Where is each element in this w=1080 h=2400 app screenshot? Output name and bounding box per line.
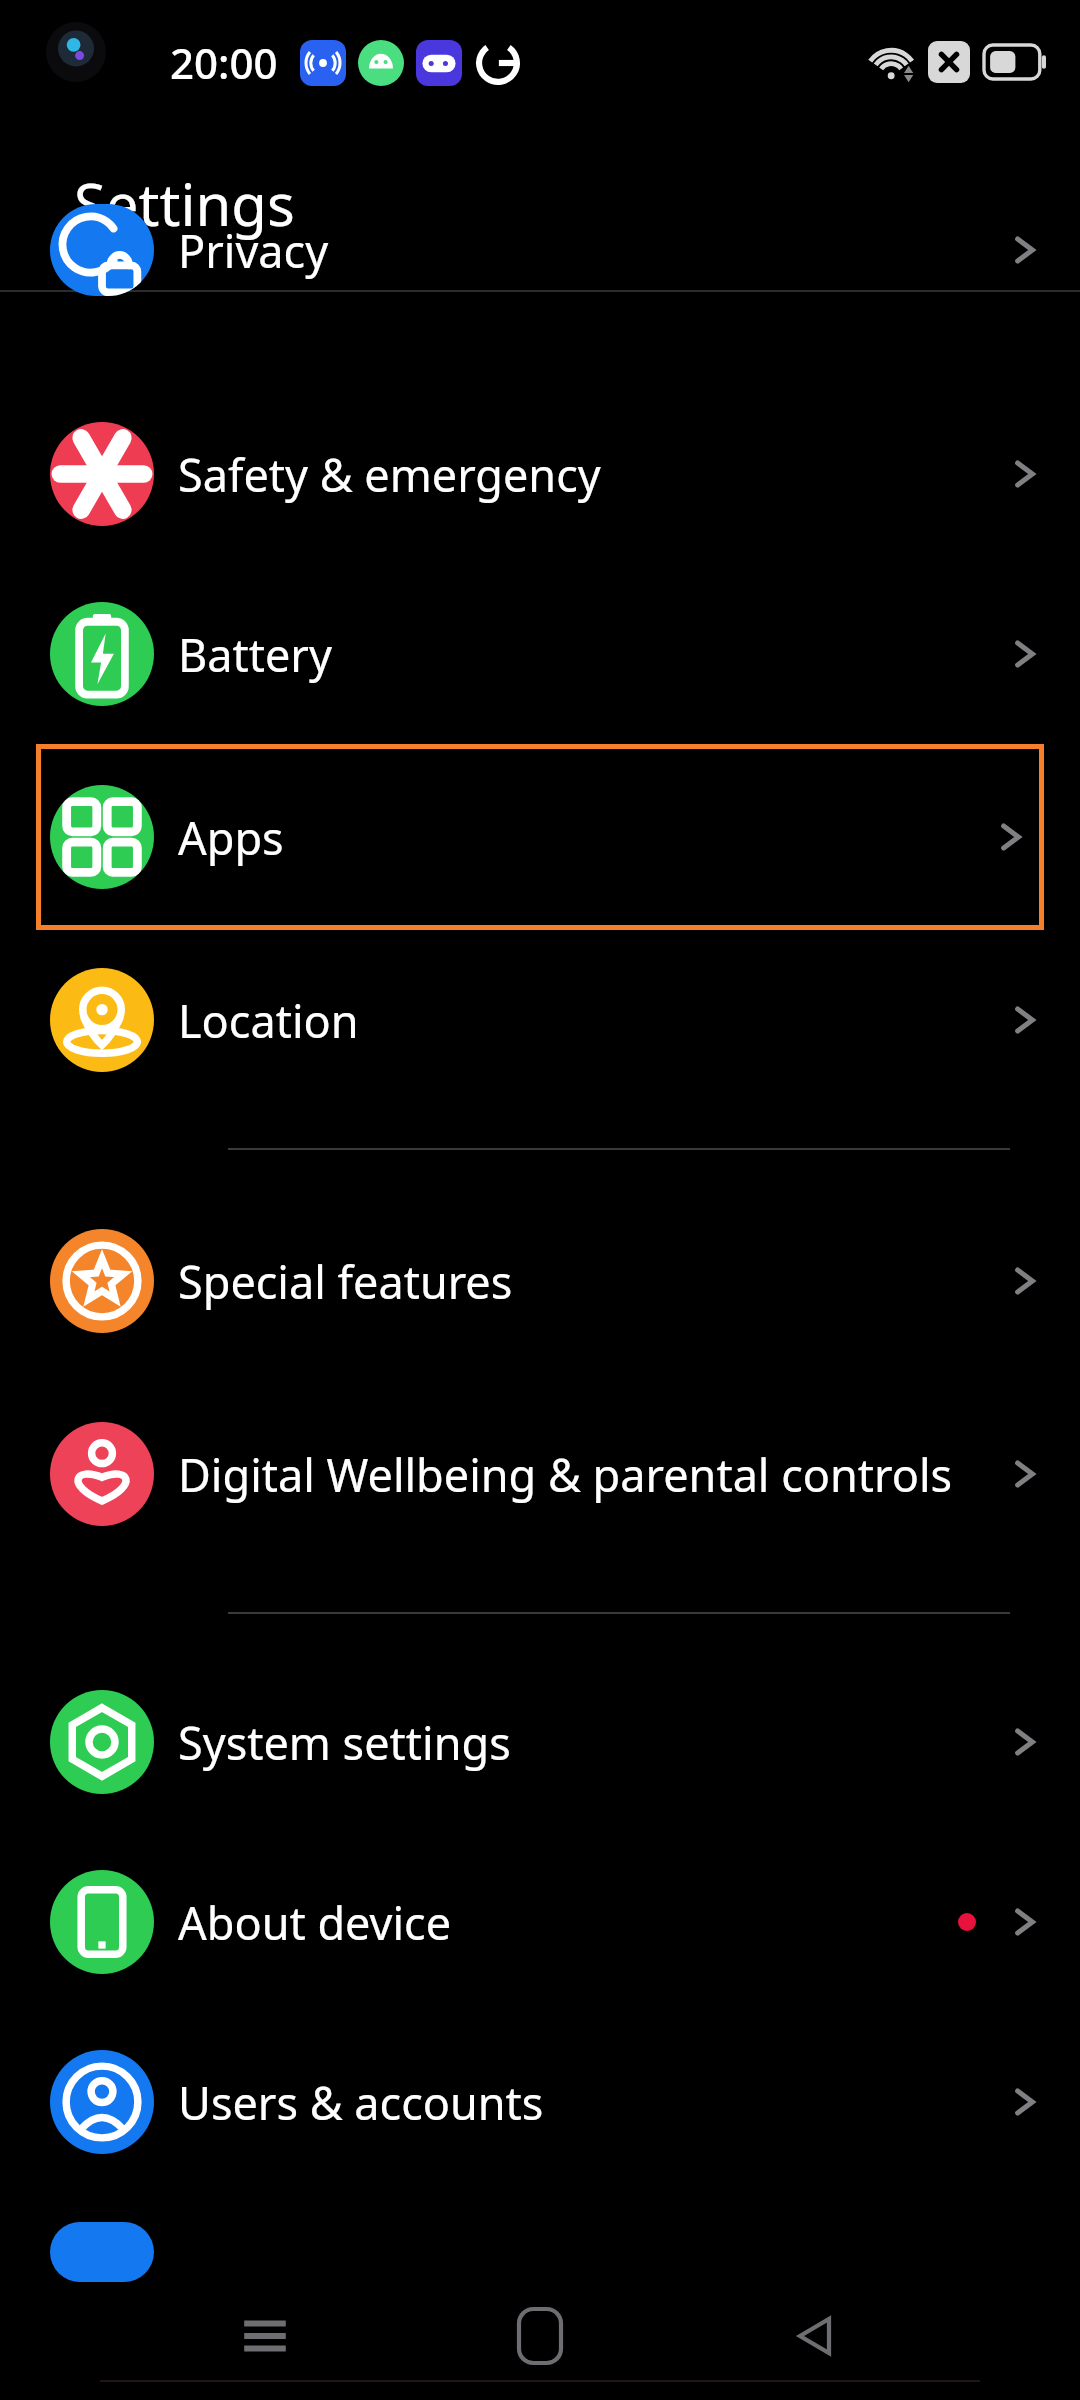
staticText: System settings <box>178 1712 1002 1773</box>
staticText: Battery <box>178 624 1002 685</box>
button[interactable]: Digital Wellbeing & parental controls <box>0 1374 1080 1574</box>
button[interactable]: Home <box>485 2281 595 2391</box>
button[interactable] <box>0 2192 1080 2252</box>
button[interactable]: Location <box>0 930 1080 1110</box>
staticText: Apps <box>178 807 988 868</box>
button[interactable]: About device <box>0 1832 1080 2012</box>
staticText: 20:00 <box>170 34 278 91</box>
staticText: Settings <box>74 164 295 243</box>
button[interactable]: Safety & emergency <box>0 384 1080 564</box>
button[interactable]: Users & accounts <box>0 2012 1080 2192</box>
button[interactable]: System settings <box>0 1652 1080 1832</box>
staticText: About device <box>178 1892 958 1953</box>
staticText: Privacy <box>178 220 1002 281</box>
staticText: Safety & emergency <box>178 444 1002 505</box>
button[interactable]: Recent apps <box>210 2281 320 2391</box>
button[interactable]: Back <box>760 2281 870 2391</box>
staticText: Users & accounts <box>178 2072 1002 2133</box>
button[interactable]: Battery <box>0 564 1080 744</box>
button[interactable]: Apps <box>36 744 1044 930</box>
staticText: Special features <box>178 1251 1002 1312</box>
button[interactable]: Privacy <box>0 292 1080 384</box>
staticText: Digital Wellbeing & parental controls <box>178 1444 1002 1505</box>
button[interactable]: Special features <box>0 1188 1080 1374</box>
staticText: Location <box>178 990 1002 1051</box>
